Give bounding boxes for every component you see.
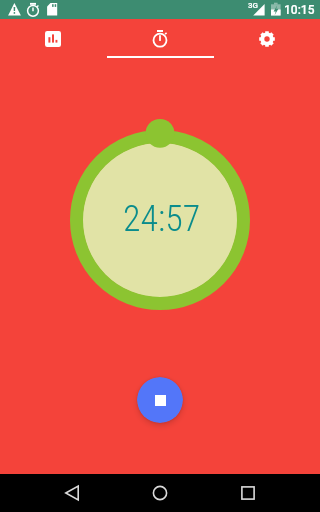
button[interactable]: Home (137, 474, 183, 512)
button[interactable]: Statistics (0, 19, 106, 58)
button[interactable]: Recent apps (225, 474, 271, 512)
button[interactable]: Back (49, 474, 95, 512)
staticText: 3G (248, 1, 258, 10)
button[interactable]: Settings (213, 19, 320, 58)
button[interactable]: Timer (106, 19, 213, 58)
button[interactable]: Stop timer (137, 377, 183, 423)
staticText: 10:15 (284, 3, 315, 17)
staticText: 24:57 (123, 198, 201, 240)
